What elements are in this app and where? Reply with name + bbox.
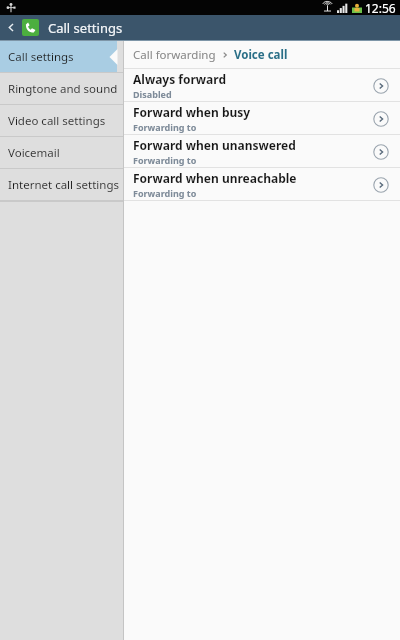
staticText: Video call settings <box>8 113 106 129</box>
staticText: Forward when unreachable <box>133 170 297 186</box>
staticText: Forward when busy <box>133 104 251 120</box>
button[interactable]: Forward when busy <box>124 102 400 135</box>
button[interactable]: Always forward <box>124 69 400 102</box>
staticText: Voice call <box>234 47 288 63</box>
staticText: Call forwarding <box>133 47 216 63</box>
button[interactable]: Internet call settings <box>0 169 124 201</box>
staticText: Internet call settings <box>8 177 119 193</box>
staticText: Ringtone and sound <box>8 81 118 97</box>
staticText: Call settings <box>8 49 74 65</box>
button[interactable]: Ringtone and sound <box>0 73 124 105</box>
staticText: Always forward <box>133 71 227 87</box>
staticText: Voicemail <box>8 145 60 161</box>
staticText: Call settings <box>48 19 123 37</box>
staticText: Forwarding to <box>133 154 197 166</box>
staticText: Forwarding to <box>133 187 197 199</box>
button[interactable]: Forward when unreachable <box>124 168 400 201</box>
button[interactable]: Video call settings <box>0 105 124 137</box>
staticText: 12:56 <box>365 0 396 15</box>
button[interactable]: Back <box>0 15 22 40</box>
button[interactable]: Voicemail <box>0 137 124 169</box>
button[interactable]: Call settings <box>0 41 124 73</box>
staticText: Forward when unanswered <box>133 137 296 153</box>
staticText: Disabled <box>133 88 172 100</box>
staticText: Forwarding to <box>133 121 197 133</box>
button[interactable]: Forward when unanswered <box>124 135 400 168</box>
